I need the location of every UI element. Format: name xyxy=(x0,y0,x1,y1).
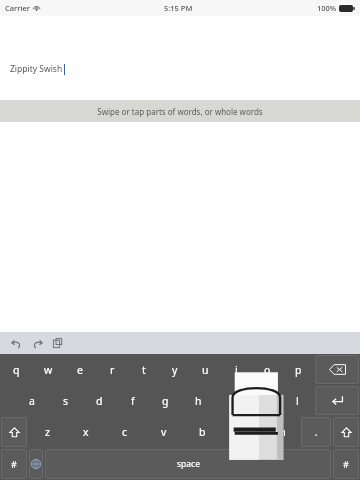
button[interactable]: Change language xyxy=(29,449,43,479)
staticText: q xyxy=(13,363,20,377)
staticText: e xyxy=(77,363,83,377)
staticText: l xyxy=(296,394,299,408)
staticText: n xyxy=(238,425,245,439)
staticText: x xyxy=(83,425,89,439)
button[interactable]: a xyxy=(15,385,49,416)
staticText: p xyxy=(295,363,302,377)
staticText: m xyxy=(276,425,286,439)
staticText: c xyxy=(122,425,128,439)
staticText: b xyxy=(199,425,206,439)
button[interactable]: w xyxy=(32,354,64,385)
staticText: Swipe or tap parts of words, or whole wo… xyxy=(97,106,263,117)
staticText: f xyxy=(131,394,135,408)
button[interactable]: c xyxy=(105,416,144,448)
button[interactable]: Copy xyxy=(49,334,67,352)
staticText: z xyxy=(45,425,50,439)
staticText: y xyxy=(172,363,178,377)
staticText: u xyxy=(202,363,209,377)
button[interactable]: Period xyxy=(301,417,331,447)
staticText: # xyxy=(11,458,17,470)
staticText: w xyxy=(44,363,53,377)
button[interactable]: s xyxy=(49,385,83,416)
staticText: g xyxy=(162,394,169,408)
staticText: v xyxy=(161,425,167,439)
staticText: Carrier xyxy=(5,3,30,13)
button[interactable]: u xyxy=(190,354,221,385)
staticText: space xyxy=(177,458,200,470)
button[interactable]: Symbols xyxy=(333,449,359,479)
staticText: t xyxy=(142,363,146,377)
button[interactable]: b xyxy=(183,416,222,448)
staticText: 5:15 PM xyxy=(164,3,193,13)
staticText: j xyxy=(230,394,233,408)
button[interactable]: f xyxy=(116,385,149,416)
button[interactable] xyxy=(315,355,359,384)
staticText: . xyxy=(315,425,318,439)
staticText: # xyxy=(343,458,349,470)
staticText: 100% xyxy=(317,3,337,13)
button[interactable]: v xyxy=(144,416,183,448)
staticText: s xyxy=(63,394,69,408)
button[interactable]: r xyxy=(96,354,128,385)
staticText: k xyxy=(262,394,268,408)
button[interactable]: Shift xyxy=(1,417,27,447)
button[interactable]: space xyxy=(45,449,331,479)
button[interactable]: q xyxy=(0,354,32,385)
button[interactable]: z xyxy=(28,416,66,448)
staticText: a xyxy=(29,394,35,408)
staticText: d xyxy=(96,394,103,408)
button[interactable]: i xyxy=(221,354,252,385)
button[interactable]: k xyxy=(248,385,281,416)
button[interactable]: h xyxy=(182,385,215,416)
button[interactable]: j xyxy=(215,385,248,416)
button[interactable]: n xyxy=(222,416,261,448)
staticText: o xyxy=(264,363,271,377)
staticText: h xyxy=(195,394,202,408)
button[interactable]: l xyxy=(281,385,314,416)
button[interactable]: x xyxy=(66,416,105,448)
button[interactable]: g xyxy=(149,385,182,416)
button[interactable]: Shift xyxy=(333,417,359,447)
button[interactable]: y xyxy=(159,354,190,385)
button[interactable]: p xyxy=(283,354,314,385)
button[interactable]: Zippity Swish xyxy=(0,16,360,100)
button[interactable]: m xyxy=(261,416,300,448)
button[interactable]: t xyxy=(128,354,159,385)
staticText: r xyxy=(110,363,115,377)
button[interactable]: o xyxy=(252,354,283,385)
button[interactable]: Undo xyxy=(7,334,25,352)
staticText: Zippity Swish xyxy=(10,63,63,75)
button[interactable]: Symbols xyxy=(1,449,27,479)
button[interactable]: e xyxy=(64,354,96,385)
button[interactable] xyxy=(315,386,359,415)
button[interactable]: d xyxy=(83,385,116,416)
button[interactable]: Swipe or tap parts of words, or whole wo… xyxy=(0,100,360,122)
button[interactable]: Redo xyxy=(28,334,46,352)
staticText: i xyxy=(235,363,238,377)
